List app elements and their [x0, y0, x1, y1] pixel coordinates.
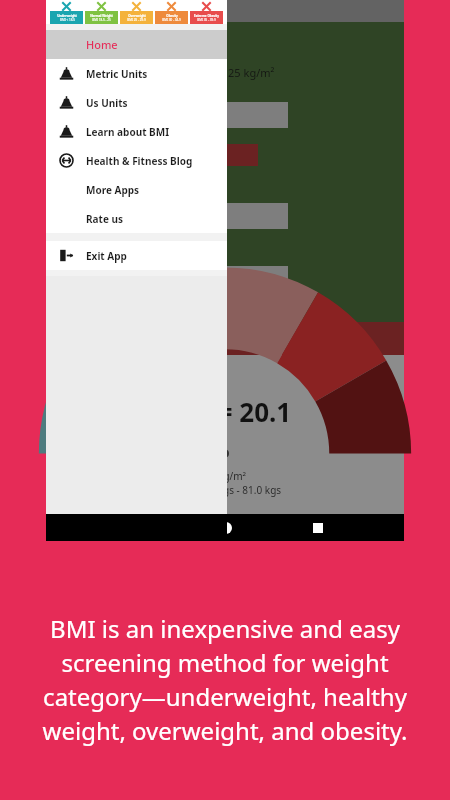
button[interactable]: Age [58, 102, 288, 128]
staticText: BMI 30 - 34.9 [162, 18, 181, 22]
button[interactable]: Normal Weight [85, 1, 118, 24]
staticText: Metric Units [86, 67, 148, 81]
staticText: Height - Cm [66, 207, 139, 225]
button[interactable]: Us Units [46, 88, 227, 117]
staticText: Healthy weight for the height: 59.9 kgs … [52, 483, 282, 497]
staticText: Overweight [128, 14, 146, 18]
staticText: Health & Fitness Blog [86, 154, 193, 168]
button[interactable]: Home [220, 522, 232, 534]
staticText: Underweight [57, 14, 77, 18]
staticText: Us Units [86, 96, 128, 110]
staticText: Rate us [86, 212, 123, 226]
button[interactable]: Home [46, 30, 227, 59]
button[interactable]: Exit App [46, 241, 227, 270]
button[interactable]: Learn about BMI [46, 117, 227, 146]
staticText: Metric Units [58, 30, 178, 59]
staticText: Normal Weight [90, 14, 113, 18]
button[interactable]: Health & Fitness Blog [46, 146, 227, 175]
button[interactable]: Metric Units [46, 59, 227, 88]
staticText: Male [64, 146, 94, 164]
button[interactable]: Underweight [50, 1, 83, 24]
button[interactable]: Height - Cm [58, 203, 288, 229]
staticText: Exit App [86, 249, 127, 263]
staticText: Learn about BMI [86, 125, 170, 139]
staticText: Female [142, 146, 187, 164]
staticText: BMI 35 - 39.9 [197, 18, 216, 22]
staticText: Obesity [166, 14, 178, 18]
button[interactable]: Male [58, 144, 258, 166]
staticText: Home [86, 37, 118, 52]
button[interactable]: More Apps [46, 175, 227, 204]
button[interactable]: Weight - Kg [58, 266, 288, 292]
button[interactable]: Obesity [155, 1, 188, 24]
staticText: Age [66, 106, 90, 124]
button[interactable]: Extreme Obesity [190, 1, 223, 24]
staticText: BMI is an inexpensive and easy screening… [28, 612, 422, 747]
staticText: or [102, 146, 116, 164]
staticText: Enter weight below in kg [58, 243, 186, 258]
staticText: More Apps [86, 183, 140, 197]
staticText: Healthy BMI range: 18.5 kg/m² - 25 kg/m² [52, 469, 247, 483]
staticText: BMI < 18.5 [60, 18, 75, 22]
staticText: BMI 25 - 29.9 [127, 18, 146, 22]
staticText: BMI = 20.1 [159, 394, 292, 429]
staticText: BMI 18.5 - 25 [92, 18, 111, 22]
button[interactable]: Rate us [46, 204, 227, 233]
button[interactable] [46, 322, 404, 355]
staticText: Extreme Obesity [194, 14, 219, 18]
button[interactable]: Overweight [120, 1, 153, 24]
staticText: Enter height below in cm [58, 180, 187, 195]
staticText: Healthy BMI range : 18.5 kg/m² - 25 kg/m… [58, 65, 275, 80]
